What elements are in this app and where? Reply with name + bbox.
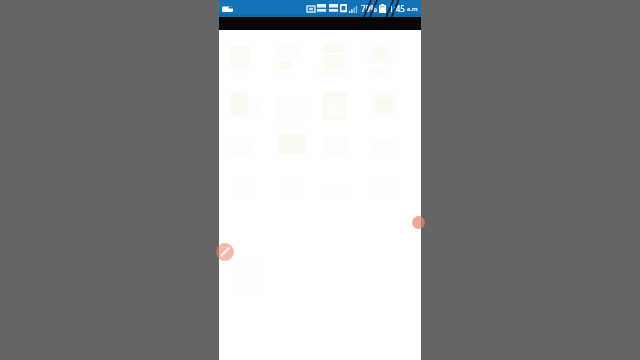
button[interactable]: App 7 — [323, 92, 347, 120]
button[interactable]: App 4 — [367, 42, 393, 64]
other: Storage notification — [222, 5, 233, 13]
staticText: 1:45 — [389, 3, 405, 14]
staticText: 79% — [361, 3, 377, 14]
button[interactable]: App 4 glyph — [371, 47, 388, 59]
button[interactable]: App 8 — [371, 93, 397, 115]
staticText: a.m — [407, 5, 418, 13]
